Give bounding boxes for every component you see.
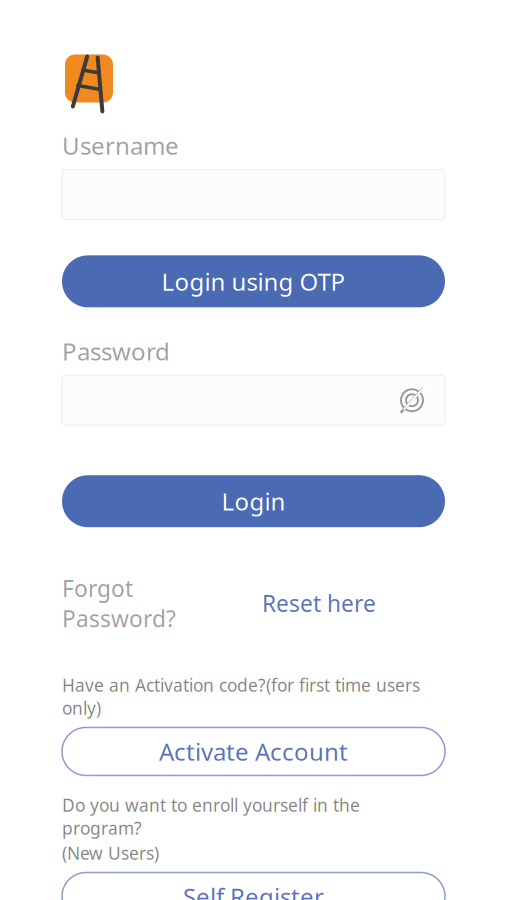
staticText: Have an Activation code?(for first time … xyxy=(62,673,420,719)
staticText: Do you want to enroll yourself in the pr… xyxy=(62,793,360,839)
button[interactable]: Login using OTP xyxy=(62,255,445,307)
button[interactable]: Reset here xyxy=(258,582,380,624)
staticText: Activate Account xyxy=(159,735,348,767)
staticText: Login xyxy=(221,485,285,517)
staticText: Reset here xyxy=(262,588,376,618)
button[interactable]: Show password xyxy=(387,379,437,421)
staticText: Username xyxy=(62,129,179,161)
staticText: Self Register xyxy=(183,881,324,900)
button[interactable]: Login xyxy=(62,475,445,527)
button[interactable]: Self Register xyxy=(62,872,445,900)
staticText: (New Users) xyxy=(62,841,159,864)
button[interactable]: Activate Account xyxy=(62,727,445,775)
staticText: Forgot Password? xyxy=(62,573,176,633)
staticText: Password xyxy=(62,335,170,367)
staticText: Login using OTP xyxy=(161,265,345,297)
